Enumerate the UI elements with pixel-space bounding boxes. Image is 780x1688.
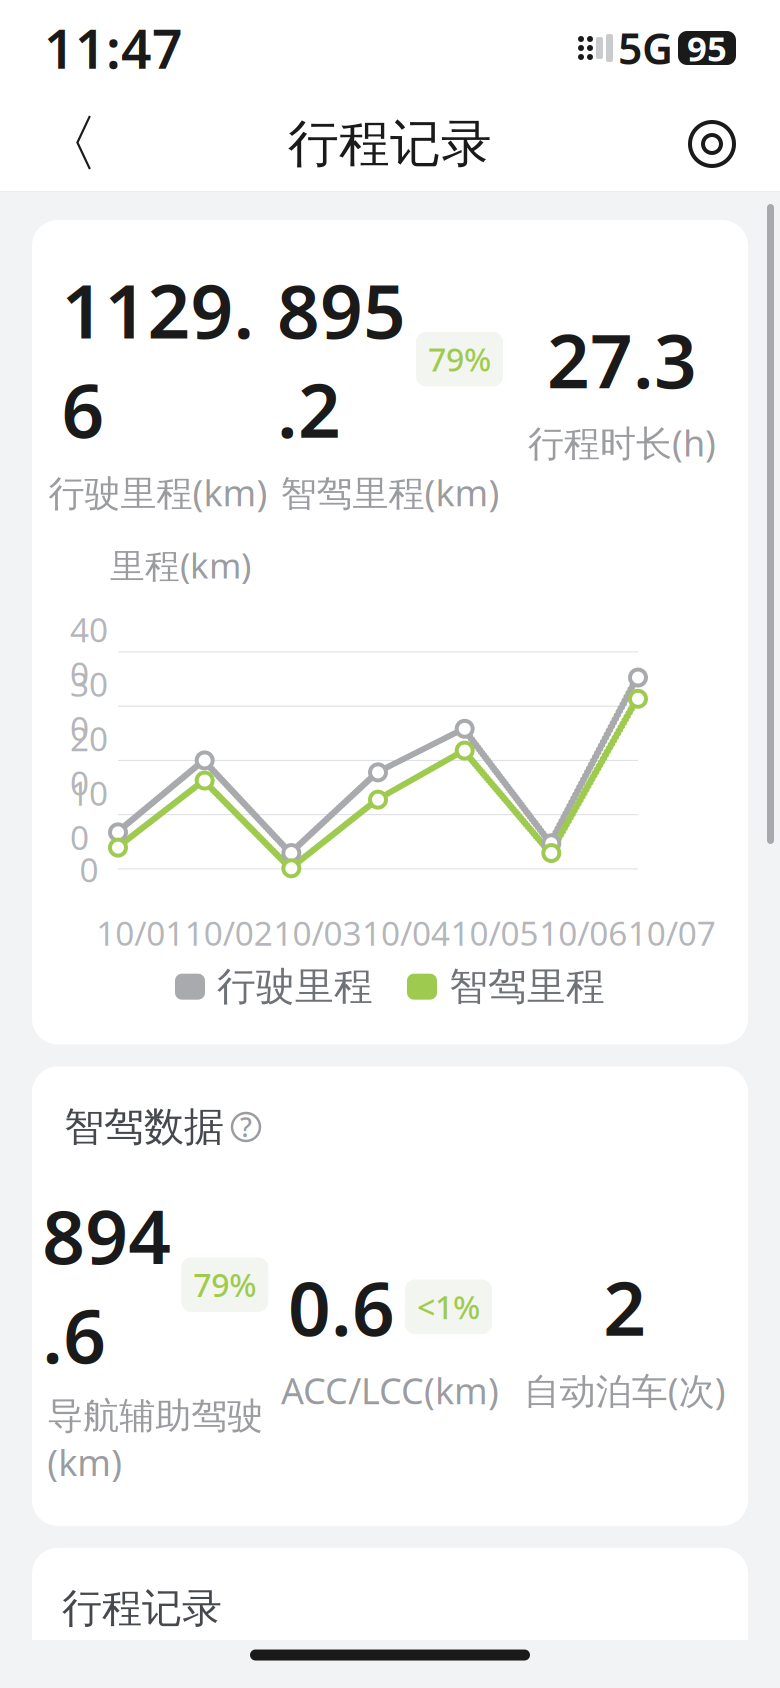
staticText: 自动泊车(次) (524, 1366, 726, 1414)
staticText: 95 (687, 25, 727, 71)
staticText: 2 (603, 1257, 646, 1356)
staticText: 导航辅助驾驶(km) (47, 1394, 263, 1486)
staticText: 〈 (37, 106, 98, 182)
staticText: 300 (70, 662, 108, 750)
button[interactable]: 设置 (670, 102, 754, 186)
staticText: 10/04 (362, 911, 450, 955)
staticText: 27.3 (547, 310, 697, 409)
staticText: 智驾里程 (449, 963, 605, 1010)
button[interactable]: 返回 (26, 102, 110, 186)
staticText: 11:47 (44, 13, 183, 83)
staticText: 894.6 (42, 1185, 171, 1384)
staticText: ACC/LCC(km) (281, 1366, 499, 1414)
staticText: 10/05 (451, 911, 539, 955)
staticText: 行程记录 (288, 113, 492, 175)
staticText: <1% (417, 1286, 480, 1328)
staticText: 智驾里程(km) (280, 468, 499, 516)
staticText: 79% (193, 1263, 256, 1306)
staticText: 895.2 (277, 260, 406, 458)
staticText: 0 (79, 847, 98, 892)
staticText: 1129.6 (61, 260, 254, 458)
staticText: 79% (428, 338, 491, 380)
staticText: 400 (70, 607, 108, 696)
staticText: 行驶里程(km) (48, 468, 267, 516)
staticText: 10/01 (96, 911, 184, 955)
staticText: ? (240, 1109, 252, 1145)
staticText: 10/02 (185, 911, 273, 955)
staticText: 100 (70, 771, 108, 859)
staticText: 行程记录 (62, 1584, 222, 1633)
staticText: 里程(km) (110, 542, 251, 588)
staticText: 5G (618, 20, 673, 76)
staticText: 200 (70, 716, 108, 805)
staticText: 智驾数据 (64, 1102, 224, 1151)
staticText: 行程时长(h) (528, 419, 716, 466)
staticText: 10/03 (273, 911, 361, 955)
staticText: 10/06 (539, 911, 627, 955)
staticText: 行驶里程 (217, 963, 373, 1010)
button[interactable]: 智驾数据说明 (232, 1109, 260, 1145)
staticText: 10/07 (628, 911, 716, 955)
staticText: 0.6 (288, 1257, 395, 1356)
